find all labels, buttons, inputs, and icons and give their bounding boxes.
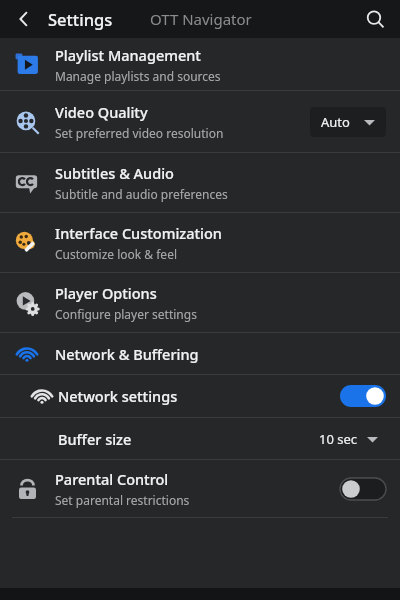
button[interactable]: Video Quality: [0, 91, 400, 152]
button[interactable]: Buffer size: [0, 418, 400, 459]
staticText: Network settings: [58, 386, 178, 406]
staticText: Manage playlists and sources: [55, 68, 221, 84]
staticText: Customize look & feel: [55, 246, 177, 262]
staticText: Buffer size: [58, 429, 132, 449]
staticText: Network & Buffering: [55, 344, 199, 364]
staticText: Set preferred video resolution: [55, 125, 224, 141]
staticText: 10 sec: [319, 430, 358, 448]
button[interactable]: Search: [358, 2, 392, 36]
staticText: Playlist Management: [55, 45, 201, 65]
staticText: Subtitles & Audio: [55, 163, 174, 183]
staticText: Auto: [321, 113, 350, 131]
staticText: Player Options: [55, 283, 157, 303]
staticText: Video Quality: [55, 102, 148, 122]
button[interactable]: Parental Control: [0, 460, 400, 517]
button[interactable]: Subtitles & Audio: [0, 153, 400, 212]
staticText: Parental Control: [55, 469, 169, 489]
button[interactable]: Back: [8, 3, 40, 35]
button[interactable]: Network settings: [0, 375, 400, 417]
button[interactable]: Auto: [310, 107, 386, 137]
staticText: OTT Navigator: [150, 9, 252, 29]
button[interactable]: Player Options: [0, 273, 400, 332]
staticText: Set parental restrictions: [55, 492, 190, 508]
button[interactable]: Interface Customization: [0, 213, 400, 272]
staticText: Subtitle and audio preferences: [55, 186, 228, 202]
staticText: Interface Customization: [55, 223, 222, 243]
button[interactable]: Network & Buffering: [0, 333, 400, 374]
button[interactable]: 10 sec: [311, 425, 386, 453]
button[interactable]: Playlist Management: [0, 38, 400, 90]
staticText: Configure player settings: [55, 306, 197, 322]
staticText: Settings: [48, 8, 113, 30]
button[interactable]: Toggle on: [340, 385, 386, 407]
button[interactable]: Toggle off: [340, 478, 386, 500]
